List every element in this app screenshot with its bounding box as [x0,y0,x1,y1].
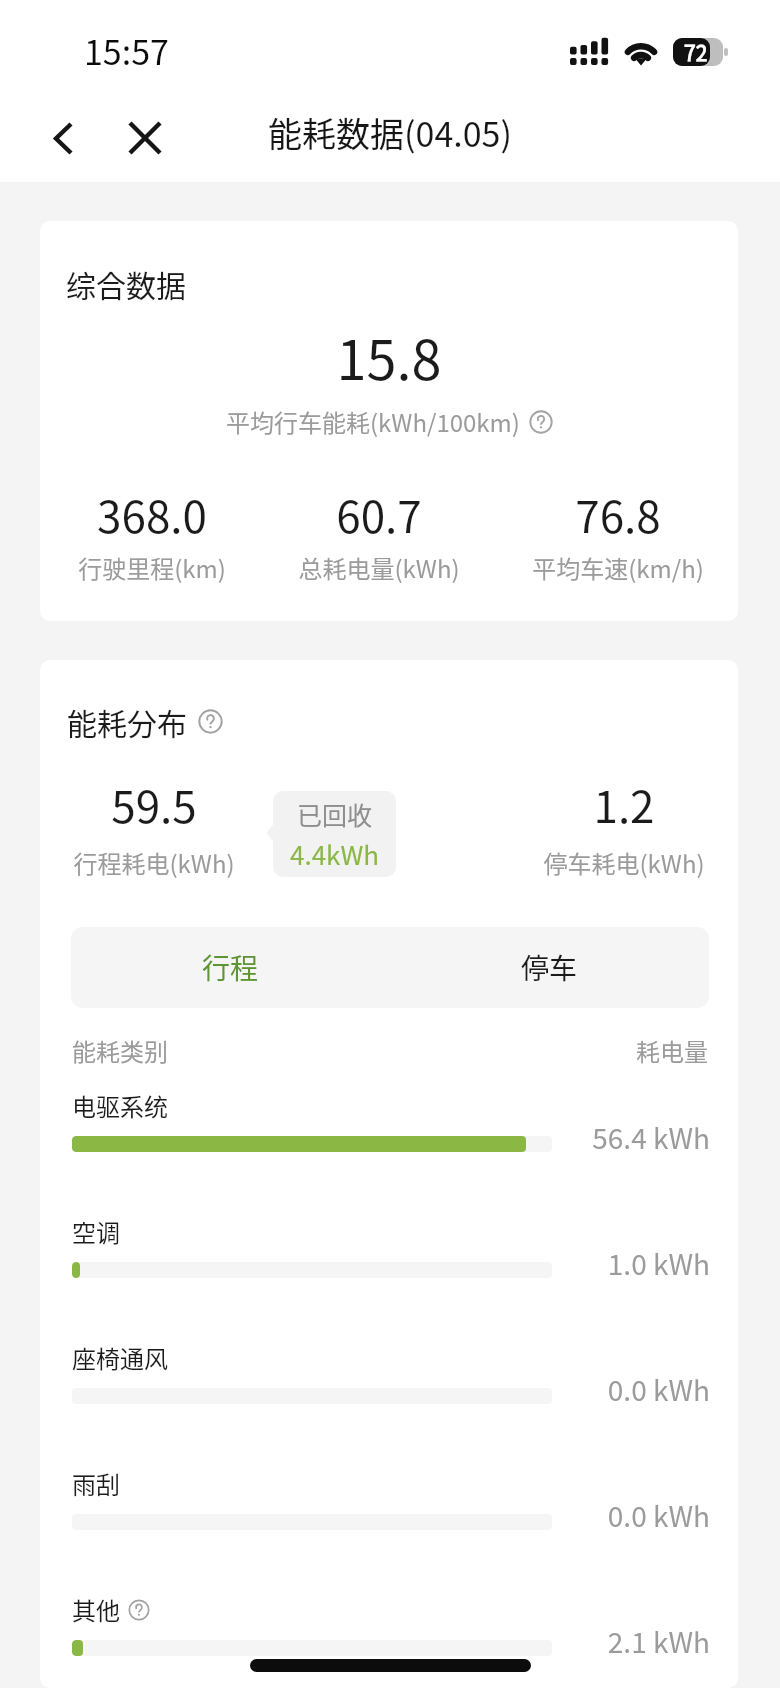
button[interactable]: 行程 [71,927,390,1008]
staticText: 能耗分布 [67,700,187,743]
staticText: 停车耗电(kWh) [510,845,738,880]
staticText: 368.0 [40,482,272,546]
staticText: 能耗类别 [72,1033,168,1068]
staticText: 行驶里程(km) [40,550,272,585]
staticText: 总耗电量(kWh) [259,550,499,585]
staticText: 0.0 kWh [40,1495,710,1536]
staticText: 耗电量 [40,1033,708,1068]
staticText: 行程耗电(kWh) [40,845,268,880]
staticText: 15.8 [40,317,738,395]
staticText: 座椅通风 [72,1340,168,1375]
staticText: 综合数据 [66,262,186,305]
staticText: 空调 [72,1214,120,1249]
staticText: 0.0 kWh [40,1369,710,1410]
button[interactable]: 停车 [390,927,709,1008]
staticText: 1.0 kWh [40,1243,710,1284]
button[interactable]: Close [117,110,173,166]
staticText: 电驱系统 [72,1088,168,1123]
staticText: 56.4 kWh [40,1117,710,1158]
staticText: 76.8 [498,482,738,546]
staticText: 72 [684,38,708,65]
staticText: 2.1 kWh [40,1621,710,1662]
staticText: 停车 [521,947,578,988]
staticText: 能耗数据(04.05) [0,108,780,157]
staticText: 15:57 [84,26,169,75]
staticText: 59.5 [40,772,268,836]
staticText: 平均行车能耗(kWh/100km) [226,404,520,439]
staticText: 4.4kWh [290,835,380,873]
staticText: 行程 [202,947,259,988]
staticText: 雨刮 [72,1466,120,1501]
staticText: 已回收 [297,796,373,832]
staticText: 1.2 [510,772,738,836]
staticText: 60.7 [259,482,499,546]
staticText: 平均车速(km/h) [498,550,738,585]
staticText: 其他 [72,1592,120,1627]
button[interactable]: Back [35,110,91,166]
